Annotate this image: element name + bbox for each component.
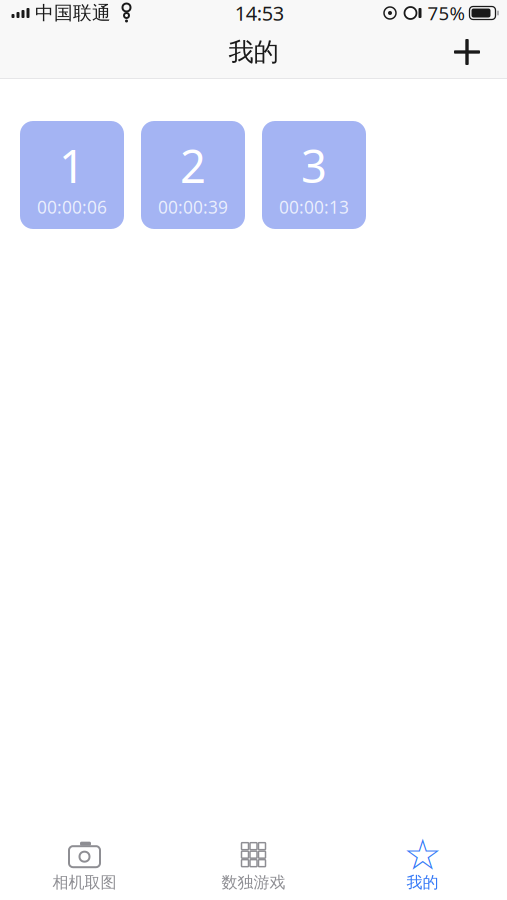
button[interactable]: 添加 [441,28,493,76]
staticText: 我的 [406,873,438,892]
button[interactable]: 数独游戏 [169,835,338,897]
staticText: 中国联通 [35,1,111,24]
staticText: 我的 [228,36,278,67]
staticText: 3 [301,135,327,196]
staticText: 相机取图 [52,873,116,892]
staticText: 00:00:39 [158,196,228,219]
button[interactable]: ☆ [338,835,507,897]
staticText: 14:53 [235,0,284,26]
staticText: 2 [180,135,206,196]
button[interactable]: 3 [262,121,366,229]
staticText: ☆ [403,830,441,879]
staticText: 1 [59,135,85,196]
staticText: 00:00:06 [37,196,107,219]
button[interactable]: 1 [20,121,124,229]
staticText: 75% [427,1,465,25]
button[interactable]: 相机取图 [0,835,169,897]
staticText: 数独游戏 [221,873,285,892]
button[interactable]: 2 [141,121,245,229]
staticText: 00:00:13 [279,196,349,219]
